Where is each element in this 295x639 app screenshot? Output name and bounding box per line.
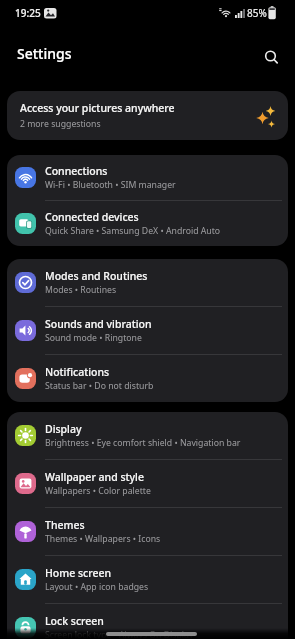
- staticText: 19:25: [15, 6, 41, 20]
- staticText: Brightness • Eye comfort shield • Naviga…: [45, 437, 241, 449]
- staticText: Connections: [45, 164, 108, 178]
- staticText: Home screen: [45, 566, 112, 580]
- staticText: Wallpapers • Color palette: [45, 485, 151, 497]
- staticText: Themes: [45, 518, 85, 532]
- staticText: Sound mode • Ringtone: [45, 332, 142, 344]
- button[interactable]: [106, 632, 197, 636]
- staticText: Connected devices: [45, 210, 139, 224]
- button[interactable]: Display: [7, 412, 288, 459]
- staticText: 85%: [247, 6, 267, 20]
- staticText: Wallpaper and style: [45, 470, 144, 484]
- staticText: Modes • Routines: [45, 284, 117, 296]
- staticText: Settings: [17, 44, 72, 63]
- staticText: Quick Share • Samsung DeX • Android Auto: [45, 225, 221, 237]
- staticText: Layout • App icon badges: [45, 581, 149, 593]
- button[interactable]: Home screen: [7, 556, 288, 603]
- staticText: Status bar • Do not disturb: [45, 380, 154, 392]
- button[interactable]: Themes: [7, 508, 288, 555]
- button[interactable]: Modes and Routines: [7, 259, 288, 306]
- button[interactable]: Wallpaper and style: [7, 460, 288, 507]
- staticText: 2 more suggestions: [20, 118, 101, 130]
- staticText: Sounds and vibration: [45, 317, 152, 331]
- button[interactable]: Notifications: [7, 355, 288, 402]
- staticText: Wi-Fi • Bluetooth • SIM manager: [45, 179, 176, 191]
- staticText: Access your pictures anywhere: [20, 101, 175, 115]
- button[interactable]: Connected devices: [7, 201, 288, 246]
- staticText: Lock screen: [45, 614, 104, 628]
- button[interactable]: Connections: [7, 155, 288, 200]
- staticText: Themes • Wallpapers • Icons: [45, 533, 161, 545]
- button[interactable]: Sounds and vibration: [7, 307, 288, 354]
- button[interactable]: Lock screen: [7, 604, 288, 639]
- staticText: Modes and Routines: [45, 269, 148, 283]
- staticText: Notifications: [45, 365, 110, 379]
- staticText: Screen lock type • Always On Display: [45, 629, 194, 639]
- staticText: Display: [45, 422, 82, 436]
- button[interactable]: [262, 48, 280, 66]
- button[interactable]: Access your pictures anywhere: [7, 91, 288, 140]
